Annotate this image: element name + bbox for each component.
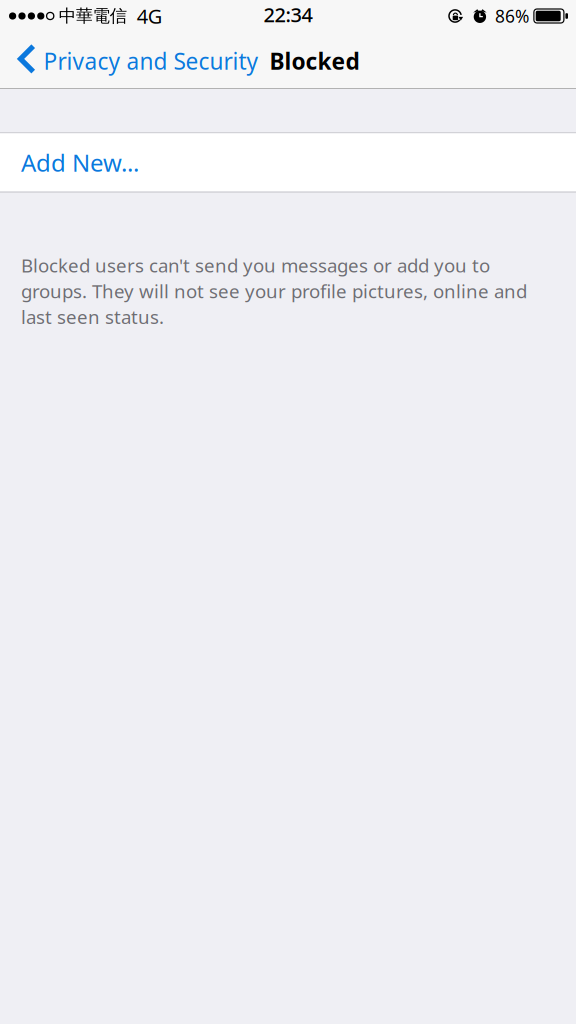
button[interactable]: Back to Privacy and Security [0, 37, 258, 84]
staticText: Blocked users can't send you messages or… [21, 253, 527, 329]
staticText: 86% [495, 4, 529, 27]
staticText: Add New... [21, 146, 139, 178]
staticText: 4G [137, 3, 163, 29]
staticText: Blocked [269, 46, 359, 76]
staticText: 中華電信 [59, 5, 127, 27]
button[interactable]: Add New... [0, 133, 576, 191]
staticText: 22:34 [263, 1, 312, 28]
staticText: Privacy and Security [43, 46, 258, 76]
